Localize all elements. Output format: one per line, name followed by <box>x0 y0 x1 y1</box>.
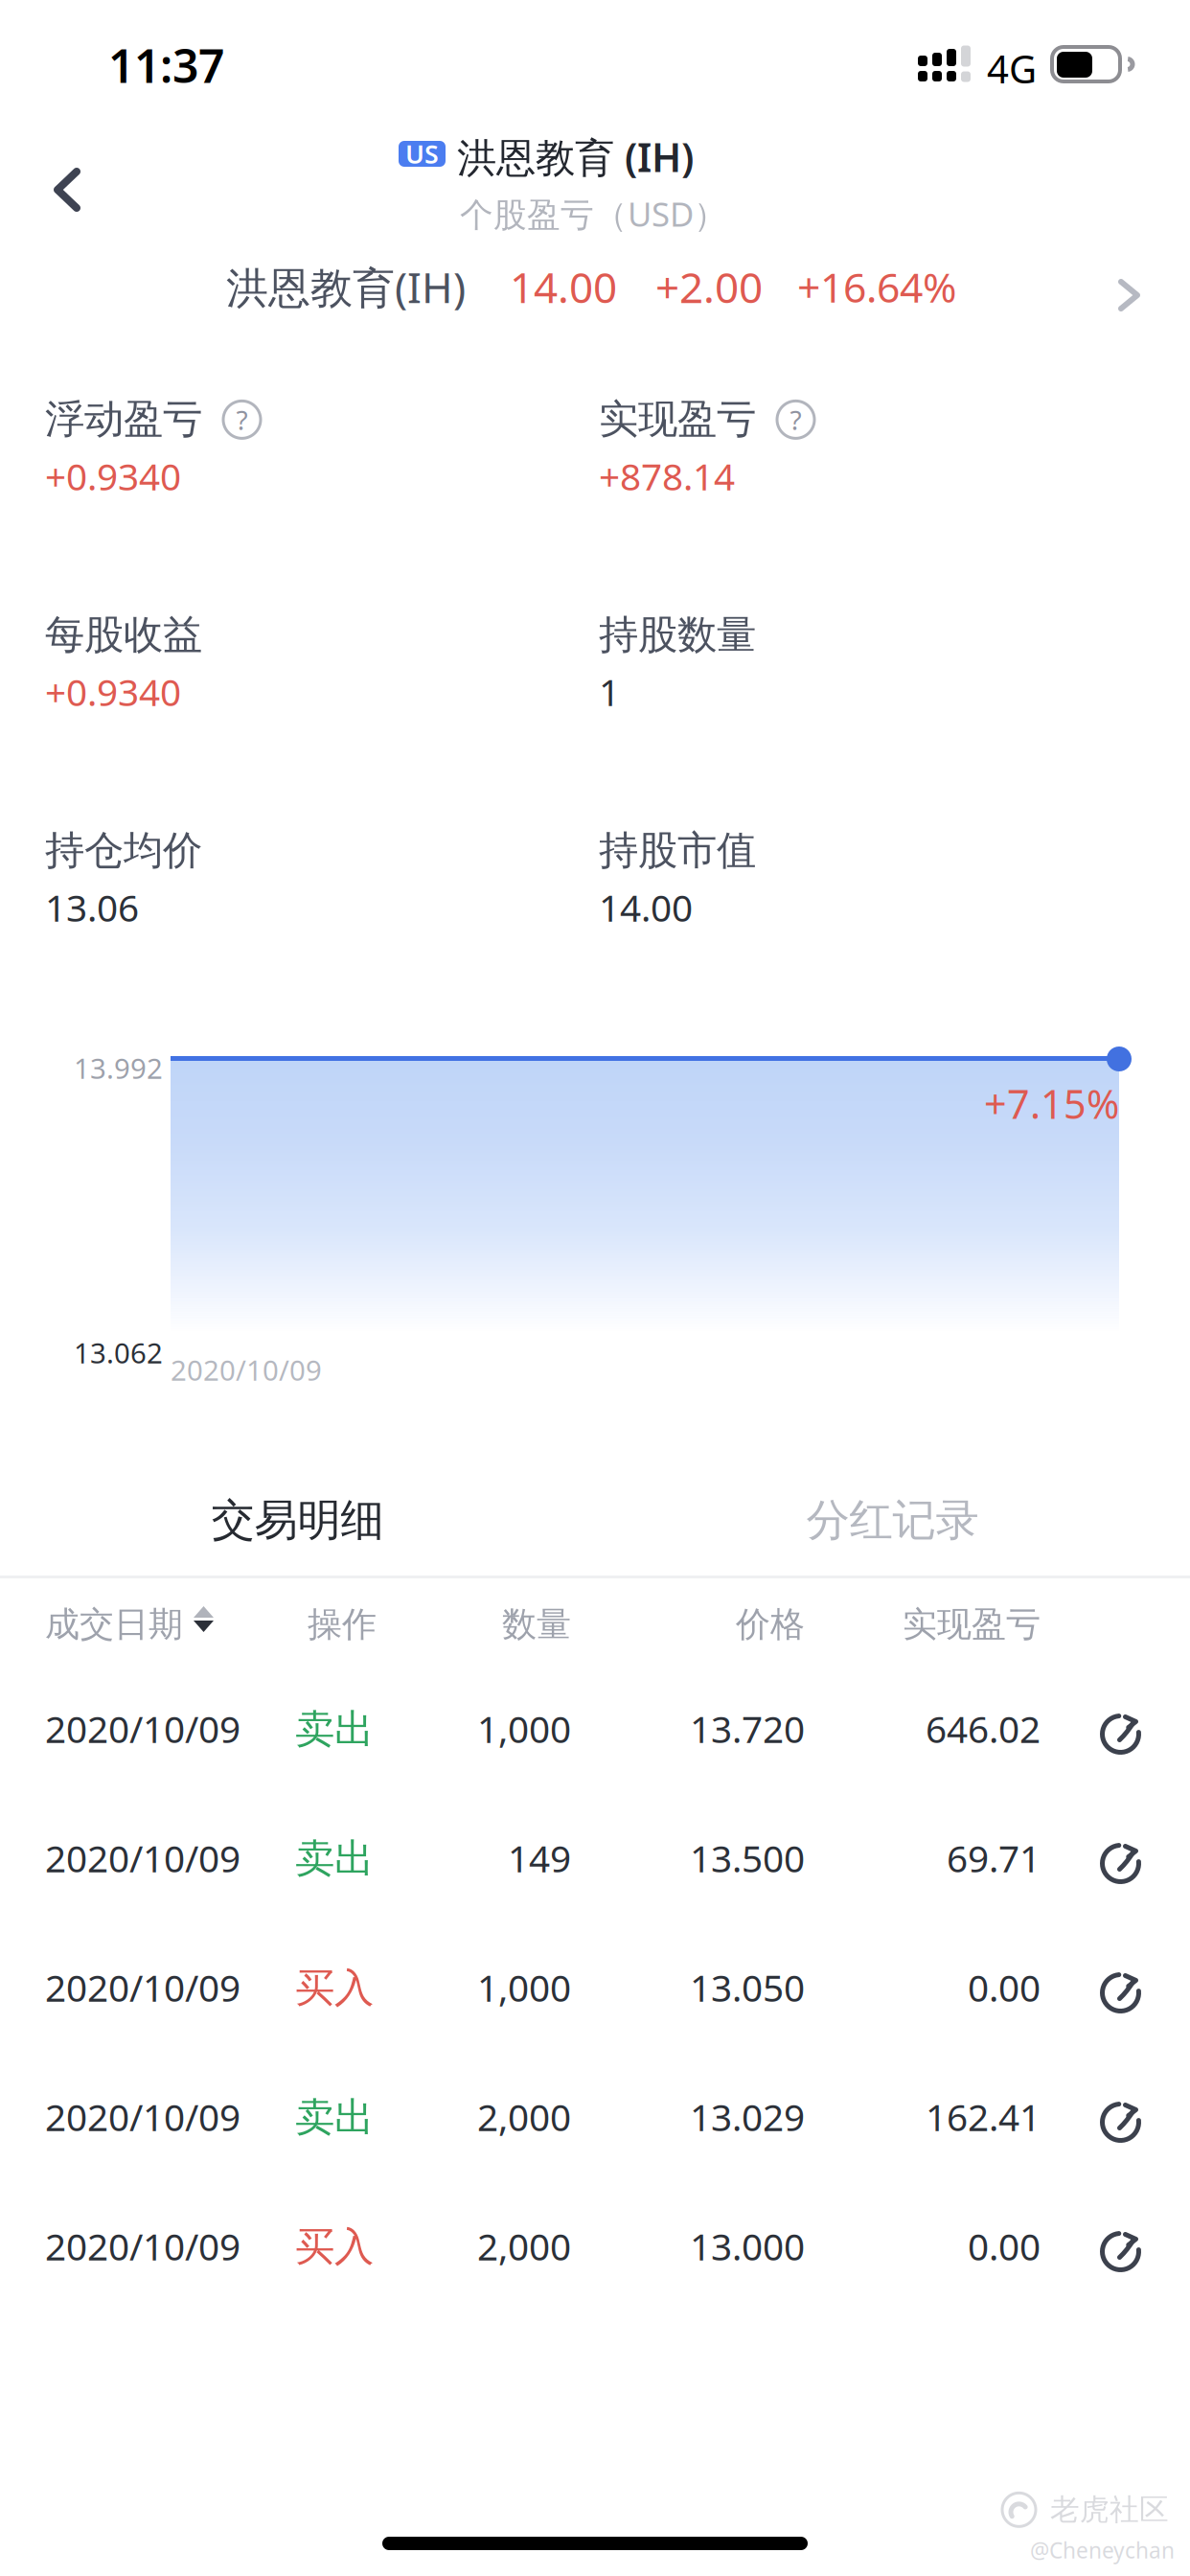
staticText: ? <box>236 402 248 437</box>
staticText: 2,000 <box>477 2092 571 2141</box>
staticText: 交易明细 <box>211 1494 384 1547</box>
staticText: +0.9340 <box>45 667 181 716</box>
staticText: 持股数量 <box>599 610 756 659</box>
staticText: 69.71 <box>947 1833 1041 1882</box>
staticText: 1,000 <box>477 1704 571 1753</box>
staticText: 1 <box>599 667 620 716</box>
staticText: +7.15% <box>984 1077 1119 1130</box>
staticText: 成交日期 <box>45 1603 183 1646</box>
staticText: 洪恩教育 (IH) <box>457 130 694 183</box>
staticText: 13.500 <box>690 1833 805 1882</box>
staticText: US <box>405 137 439 171</box>
staticText: 分红记录 <box>806 1494 979 1547</box>
staticText: 646.02 <box>926 1704 1041 1753</box>
staticText: 个股盈亏（USD） <box>460 192 727 236</box>
staticText: +878.14 <box>599 451 735 501</box>
staticText: 0.00 <box>968 1963 1041 2012</box>
staticText: 0.00 <box>968 2221 1041 2271</box>
staticText: 数量 <box>502 1603 571 1646</box>
staticText: 2020/10/09 <box>45 2221 240 2271</box>
staticText: 13.992 <box>74 1049 163 1087</box>
button[interactable]: Re-trade <box>1091 2093 1147 2147</box>
staticText: 每股收益 <box>45 610 202 659</box>
staticText: 2020/10/09 <box>45 1963 240 2012</box>
staticText: 14.00 <box>510 259 617 315</box>
staticText: 操作 <box>308 1603 377 1646</box>
staticText: 持股市值 <box>599 826 756 875</box>
staticText: 卖出 <box>295 1705 374 1754</box>
button[interactable]: 分红记录 <box>595 1466 1190 1575</box>
staticText: @Cheneychan <box>1030 2536 1175 2565</box>
staticText: 13.029 <box>690 2092 805 2141</box>
staticText: 13.720 <box>690 1704 805 1753</box>
staticText: 1,000 <box>477 1963 571 2012</box>
staticText: ? <box>790 402 801 437</box>
staticText: +16.64% <box>797 260 956 314</box>
button[interactable]: Re-trade <box>1091 1705 1147 1759</box>
staticText: 2020/10/09 <box>45 1833 240 1882</box>
button[interactable]: Back <box>11 146 124 232</box>
staticText: 实现盈亏 <box>599 395 756 444</box>
staticText: 2020/10/09 <box>45 1704 240 1753</box>
button[interactable]: 交易明细 <box>0 1466 595 1575</box>
button[interactable]: Re-trade <box>1091 1834 1147 1888</box>
button[interactable]: Re-trade <box>1091 1964 1147 2017</box>
staticText: 实现盈亏 <box>903 1603 1041 1646</box>
button[interactable]: 洪恩教育(IH) <box>0 0 1190 2576</box>
staticText: 13.062 <box>74 1334 163 1371</box>
staticText: 持仓均价 <box>45 826 202 875</box>
staticText: 2,000 <box>477 2221 571 2271</box>
staticText: +0.9340 <box>45 451 181 501</box>
staticText: 老虎社区 <box>1050 2492 1169 2528</box>
staticText: 买入 <box>295 2222 374 2271</box>
staticText: 卖出 <box>295 2093 374 2142</box>
staticText: 13.06 <box>45 883 139 932</box>
staticText: 11:37 <box>108 34 224 96</box>
staticText: 2020/10/09 <box>171 1351 322 1389</box>
staticText: 洪恩教育(IH) <box>226 259 466 315</box>
staticText: 162.41 <box>926 2092 1041 2141</box>
staticText: 13.050 <box>690 1963 805 2012</box>
staticText: 买入 <box>295 1964 374 2012</box>
staticText: 14.00 <box>599 883 693 932</box>
staticText: 2020/10/09 <box>45 2092 240 2141</box>
staticText: 4G <box>987 43 1037 94</box>
staticText: 13.000 <box>690 2221 805 2271</box>
staticText: 卖出 <box>295 1834 374 1883</box>
staticText: +2.00 <box>655 259 763 315</box>
button[interactable]: Re-trade <box>1091 2222 1147 2276</box>
staticText: 浮动盈亏 <box>45 395 202 444</box>
staticText: 149 <box>508 1833 571 1882</box>
staticText: 价格 <box>736 1603 805 1646</box>
